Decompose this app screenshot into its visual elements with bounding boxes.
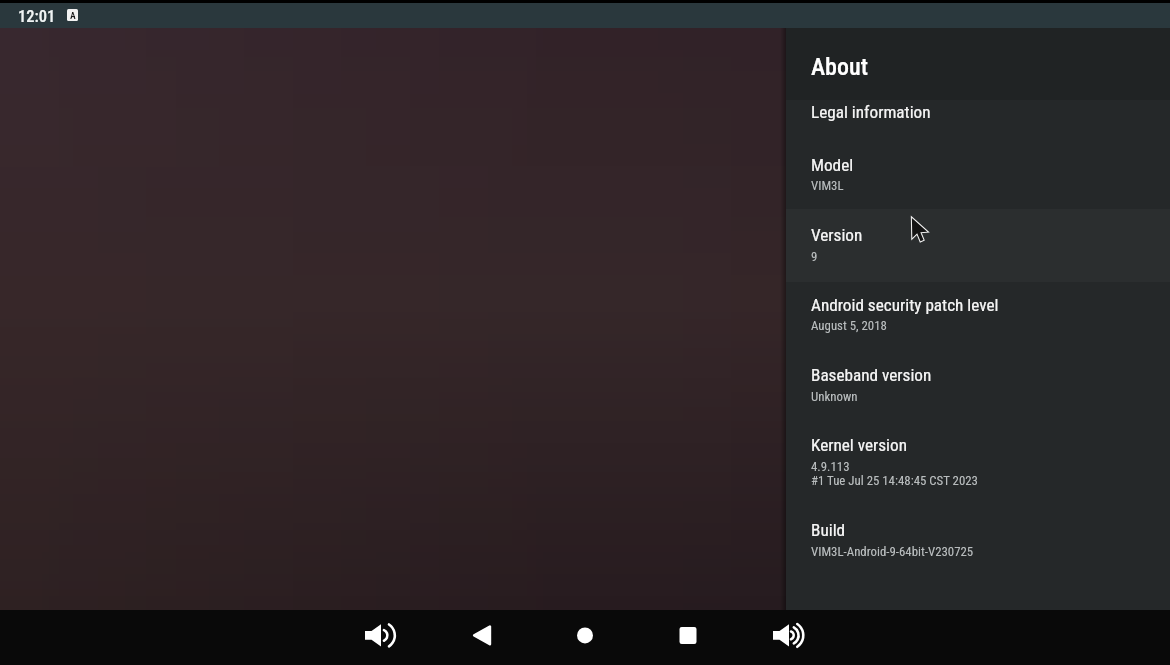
button[interactable]: Version <box>786 209 1170 282</box>
button[interactable]: Recents <box>664 610 712 658</box>
staticText: About <box>811 53 868 81</box>
button[interactable]: Volume down <box>357 610 405 658</box>
staticText: Build <box>811 520 846 540</box>
button[interactable]: Android security patch level <box>786 282 1170 348</box>
button[interactable]: Home <box>561 610 609 658</box>
other: ADB enabled <box>67 9 78 21</box>
button[interactable]: Legal information <box>786 100 1170 145</box>
button[interactable]: Build <box>786 503 1170 573</box>
staticText: 12:01 <box>18 7 56 26</box>
staticText: VIM3L <box>811 178 844 193</box>
staticText: Version <box>811 225 863 245</box>
staticText: VIM3L-Android-9-64bit-V230725 <box>811 544 974 559</box>
staticText: #1 Tue Jul 25 14:48:45 CST 2023 <box>811 473 978 488</box>
staticText: 9 <box>811 249 818 264</box>
button[interactable]: About <box>786 28 1170 100</box>
staticText: A <box>70 10 76 21</box>
staticText: 4.9.113 <box>811 459 850 474</box>
staticText: Model <box>811 155 854 175</box>
staticText: Baseband version <box>811 365 932 385</box>
button[interactable]: Back <box>458 610 506 658</box>
staticText: Kernel version <box>811 435 907 455</box>
button[interactable]: Kernel version <box>786 418 1170 503</box>
staticText: Unknown <box>811 389 858 404</box>
button[interactable]: Model <box>786 145 1170 209</box>
button[interactable]: Volume up <box>765 610 813 658</box>
staticText: Legal information <box>811 102 931 122</box>
staticText: August 5, 2018 <box>811 318 887 333</box>
staticText: Android security patch level <box>811 295 999 315</box>
button[interactable]: Baseband version <box>786 348 1170 418</box>
